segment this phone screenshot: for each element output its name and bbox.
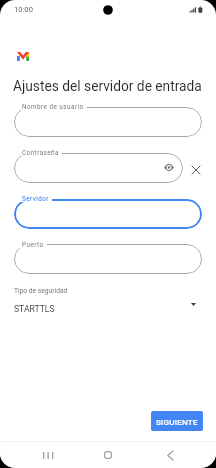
staticText: Contraseña [22,149,59,156]
staticText: STARTTLS [14,304,55,314]
staticText: Nombre de usuario [22,103,84,110]
button[interactable]: Borrar [188,162,204,178]
button[interactable]: Aplicaciones recientes [38,445,58,465]
button[interactable]: Tipo de seguridad [0,285,216,319]
button[interactable]: Inicio [98,445,118,465]
staticText: Servidor [22,195,49,202]
staticText: Ajustes del servidor de entrada [13,78,202,94]
button[interactable] [14,244,202,274]
button[interactable]: Mostrar contrasena [162,160,176,174]
staticText: Tipo de seguridad [14,287,68,295]
button[interactable]: SIGUIENTE [151,411,203,431]
button[interactable] [14,107,202,137]
button[interactable] [14,199,202,229]
staticText: SIGUIENTE [156,417,198,426]
button[interactable] [14,153,183,183]
other: Gmail [17,52,29,61]
staticText: Puerto [22,241,44,248]
button[interactable]: Atras [160,445,180,465]
staticText: 10:00 [14,5,33,14]
